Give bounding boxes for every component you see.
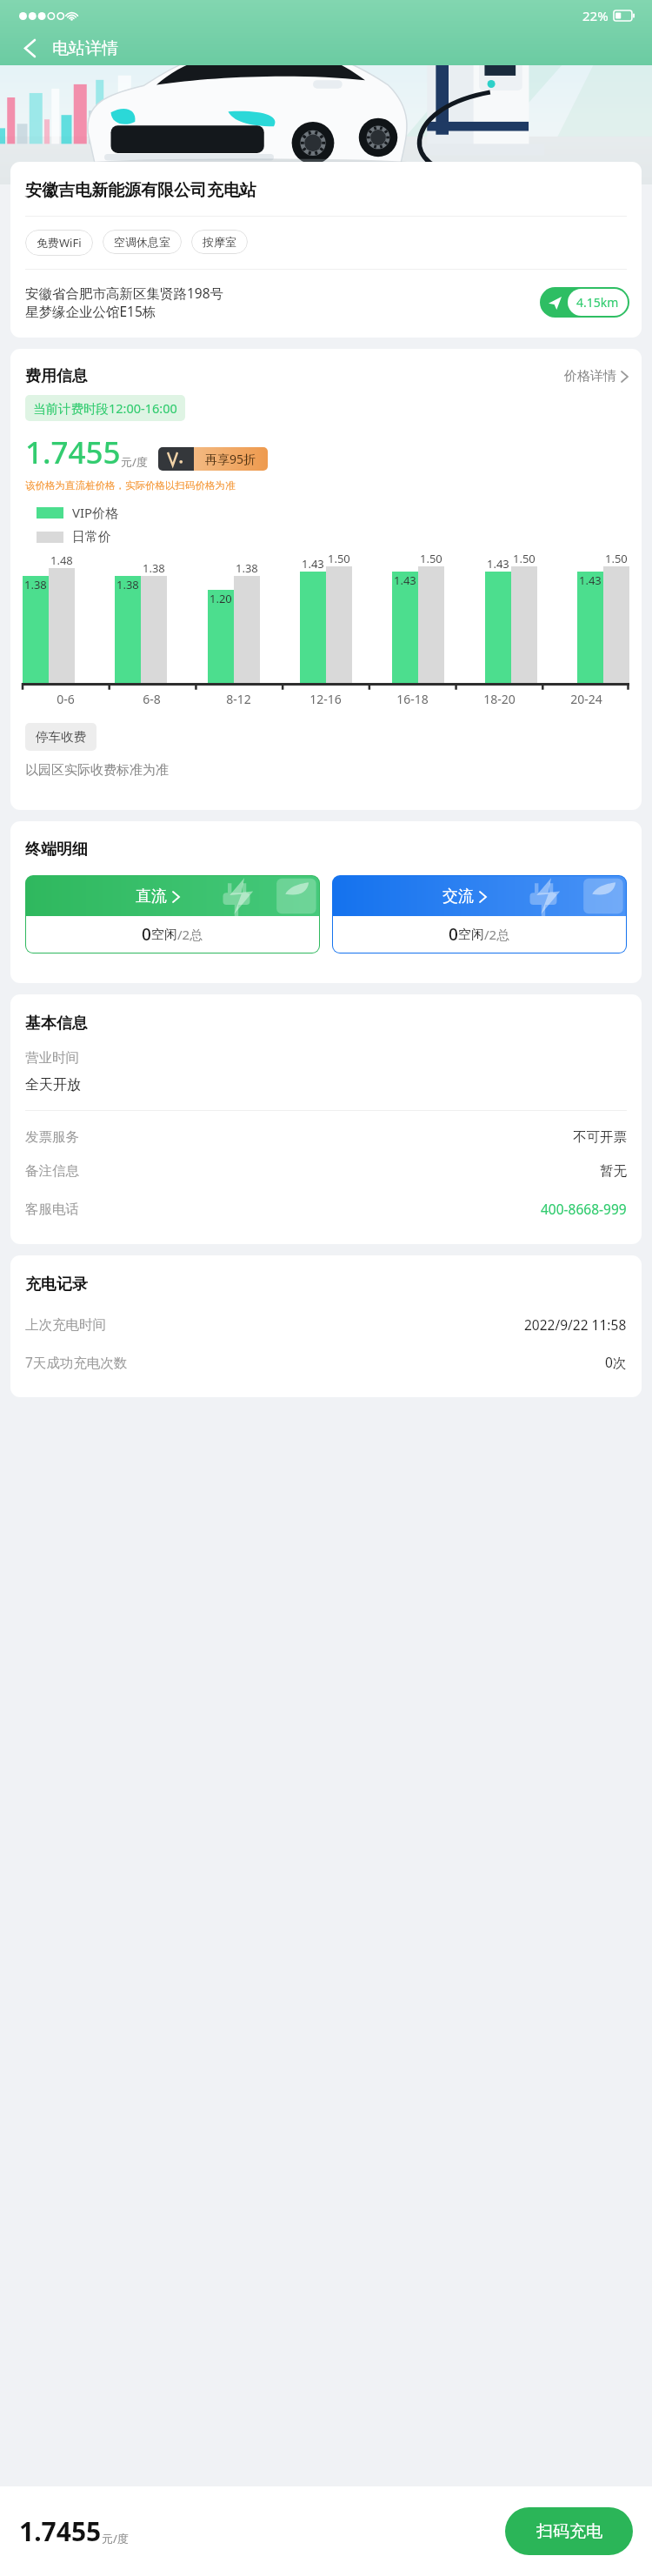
staticText: 400-8668-999 xyxy=(541,1200,627,1218)
staticText: 终端明细 xyxy=(25,840,88,860)
staticText: 1.43 xyxy=(302,556,324,572)
staticText: 1.38 xyxy=(143,560,165,576)
staticText: 12-16 xyxy=(309,691,342,707)
staticText: 1.7455 xyxy=(25,432,121,473)
button[interactable]: 交流 xyxy=(332,875,627,953)
staticText: 基本信息 xyxy=(25,1014,88,1034)
staticText: 充电记录 xyxy=(25,1275,88,1295)
staticText: 安徽省合肥市高新区集贤路198号 xyxy=(25,284,224,302)
staticText: /2总 xyxy=(484,926,510,943)
staticText: 电站详情 xyxy=(52,38,118,59)
button[interactable]: 价格详情 xyxy=(564,368,628,385)
staticText: 0 xyxy=(449,923,458,946)
staticText: 6-8 xyxy=(143,691,161,707)
staticText: 1.7455 xyxy=(19,2513,102,2549)
staticText: 元/度 xyxy=(121,454,148,470)
staticText: 空闲 xyxy=(458,927,484,943)
staticText: 7天成功充电次数 xyxy=(25,1353,128,1371)
staticText: 以园区实际收费标准为准 xyxy=(25,762,169,779)
staticText: 1.43 xyxy=(579,572,602,588)
staticText: 0次 xyxy=(605,1353,627,1371)
staticText: 价格详情 xyxy=(564,368,616,385)
staticText: 扫码充电 xyxy=(536,2521,602,2542)
staticText: 1.50 xyxy=(420,551,442,566)
button[interactable]: 停车收费 xyxy=(25,723,96,751)
staticText: 1.50 xyxy=(605,551,628,566)
staticText: 当前计费时段12:00-16:00 xyxy=(33,399,177,417)
staticText: 1.20 xyxy=(210,591,232,606)
staticText: 22% xyxy=(582,7,609,24)
staticText: 1.48 xyxy=(50,552,73,568)
staticText: 1.50 xyxy=(328,551,350,566)
staticText: 日常价 xyxy=(72,529,111,545)
button[interactable]: 空调休息室 xyxy=(103,230,182,254)
button[interactable]: 4.15km xyxy=(540,287,629,318)
staticText: 备注信息 xyxy=(25,1162,79,1180)
button[interactable]: 扫码充电 xyxy=(505,2507,633,2555)
button[interactable]: 备注信息 xyxy=(10,1161,642,1181)
staticText: 1.43 xyxy=(394,572,416,588)
button[interactable]: 上次充电时间 xyxy=(10,1314,642,1335)
staticText: 元/度 xyxy=(102,2531,129,2546)
staticText: /2总 xyxy=(177,926,203,943)
staticText: VIP价格 xyxy=(72,504,119,521)
staticText: 免费WiFi xyxy=(37,235,82,251)
button[interactable]: Back xyxy=(12,31,47,65)
button[interactable]: 7天成功充电次数 xyxy=(10,1351,642,1373)
staticText: 8-12 xyxy=(226,691,251,707)
staticText: 16-18 xyxy=(396,691,429,707)
staticText: 0 xyxy=(142,923,151,946)
staticText: 1.38 xyxy=(24,577,47,592)
staticText: 费用信息 xyxy=(25,366,88,386)
staticText: 客服电话 xyxy=(25,1201,79,1218)
staticText: 1.43 xyxy=(487,556,509,572)
staticText: 按摩室 xyxy=(203,235,236,249)
staticText: 18-20 xyxy=(483,691,516,707)
button[interactable]: 按摩室 xyxy=(191,230,248,254)
staticText: 交流 xyxy=(442,887,474,907)
staticText: 2022/9/22 11:58 xyxy=(524,1315,627,1334)
staticText: 空调休息室 xyxy=(114,235,170,249)
button[interactable]: 免费WiFi xyxy=(25,230,93,256)
staticText: 20-24 xyxy=(570,691,602,707)
staticText: 4.15km xyxy=(576,294,619,311)
staticText: 1.38 xyxy=(116,577,139,592)
staticText: 直流 xyxy=(136,887,167,907)
staticText: 空闲 xyxy=(151,927,177,943)
button[interactable]: 客服电话 xyxy=(10,1198,642,1220)
staticText: 停车收费 xyxy=(36,729,86,745)
staticText: 发票服务 xyxy=(25,1128,79,1146)
staticText: 不可开票 xyxy=(573,1128,627,1146)
staticText: 暂无 xyxy=(600,1162,627,1180)
staticText: 安徽吉电新能源有限公司充电站 xyxy=(25,180,256,201)
staticText: 1.50 xyxy=(513,551,536,566)
staticText: 星梦缘企业公馆E15栋 xyxy=(25,302,156,320)
staticText: 该价格为直流桩价格，实际价格以扫码价格为准 xyxy=(25,479,236,492)
staticText: 营业时间 xyxy=(25,1049,79,1067)
button[interactable]: 直流 xyxy=(25,875,320,953)
staticText: 1.38 xyxy=(236,560,258,576)
staticText: 0-6 xyxy=(57,691,75,707)
staticText: 上次充电时间 xyxy=(25,1316,106,1334)
staticText: 全天开放 xyxy=(25,1076,81,1094)
staticText: 再享95折 xyxy=(205,451,256,467)
button[interactable]: 发票服务 xyxy=(10,1127,642,1147)
